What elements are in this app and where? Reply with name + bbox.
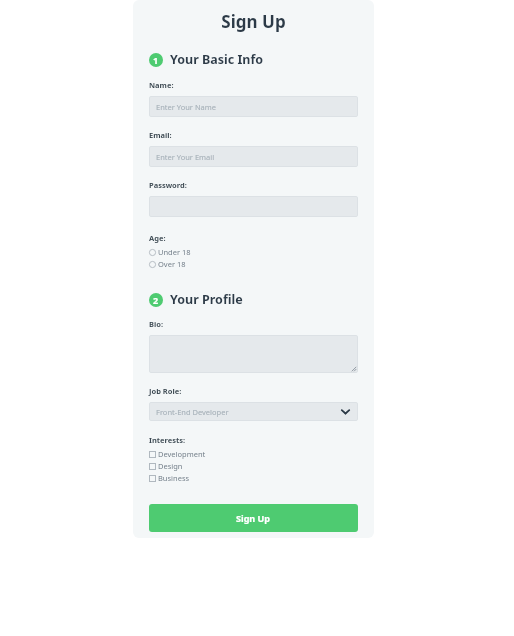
button[interactable]: Enter Your Name — [149, 96, 358, 117]
button[interactable]: Front-End Developer — [149, 402, 358, 421]
staticText: Bio: — [149, 319, 164, 329]
staticText: Enter Your Email — [156, 152, 215, 162]
staticText: Sign Up — [149, 10, 358, 33]
staticText: 1 — [153, 54, 159, 66]
staticText: Sign Up — [236, 512, 271, 524]
staticText: Over 18 — [158, 259, 186, 269]
staticText: Name: — [149, 80, 174, 90]
staticText: Job Role: — [149, 386, 182, 396]
button[interactable]: Development — [149, 449, 206, 459]
button[interactable]: Design — [149, 461, 183, 471]
staticText: Front-End Developer — [156, 407, 229, 417]
staticText: Design — [158, 461, 183, 471]
staticText: Your Profile — [170, 291, 243, 308]
button[interactable]: Business — [149, 473, 190, 483]
button[interactable]: Over 18 — [149, 259, 186, 269]
staticText: 2 — [153, 294, 159, 306]
staticText: Password: — [149, 180, 187, 190]
staticText: Interests: — [149, 435, 186, 445]
staticText: Under 18 — [158, 247, 191, 257]
staticText: Age: — [149, 233, 166, 243]
staticText: Your Basic Info — [170, 51, 264, 68]
staticText: Development — [158, 449, 206, 459]
button[interactable]: Under 18 — [149, 247, 191, 257]
staticText: Business — [158, 473, 190, 483]
button[interactable]: Sign Up — [149, 504, 358, 532]
staticText: Email: — [149, 130, 172, 140]
button[interactable]: Enter Your Email — [149, 146, 358, 167]
staticText: Enter Your Name — [156, 102, 217, 112]
